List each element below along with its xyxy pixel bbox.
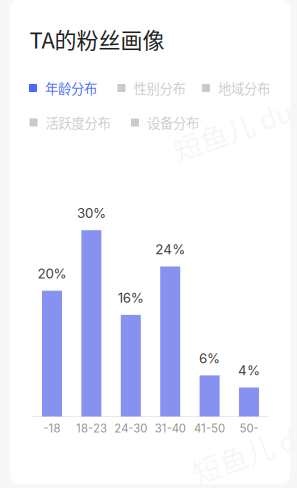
button[interactable]: 性别分布 — [117, 78, 201, 98]
staticText: 50- — [239, 422, 258, 435]
button[interactable]: 活跃度分布 — [29, 112, 126, 132]
staticText: 24-30 — [114, 422, 147, 435]
staticText: 短鱼儿 du — [190, 432, 297, 472]
staticText: 41-50 — [194, 422, 225, 435]
staticText: 设备分布 — [147, 113, 199, 132]
staticText: TA的粉丝画像 — [29, 23, 164, 55]
staticText: 6% — [199, 350, 220, 366]
button[interactable]: 地域分布 — [202, 78, 286, 98]
staticText: -18 — [43, 422, 60, 435]
staticText: 16% — [118, 290, 144, 306]
button[interactable]: 年龄分布 — [29, 78, 113, 98]
staticText: 30% — [77, 205, 106, 221]
staticText: 性别分布 — [133, 78, 185, 98]
staticText: 4% — [238, 362, 260, 378]
button[interactable]: 设备分布 — [131, 112, 215, 132]
staticText: 20% — [37, 266, 66, 282]
staticText: 地域分布 — [218, 78, 270, 98]
staticText: 活跃度分布 — [45, 113, 110, 132]
staticText: 24% — [155, 241, 185, 257]
staticText: 18-23 — [76, 422, 107, 435]
staticText: 年龄分布 — [45, 78, 97, 98]
staticText: 31-40 — [155, 422, 186, 435]
staticText: 短鱼儿 duan — [169, 104, 297, 144]
